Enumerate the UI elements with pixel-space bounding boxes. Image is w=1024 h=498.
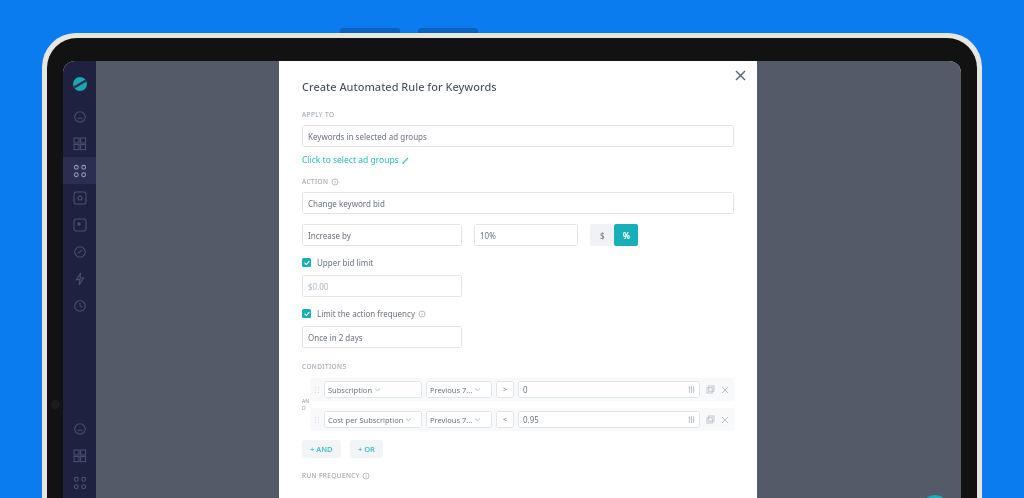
button[interactable]: Nav item 5 <box>63 238 96 265</box>
button[interactable]: Limit the action frequency <box>302 308 425 319</box>
staticText: Click to select ad groups <box>302 154 399 166</box>
button[interactable]: 0.95 <box>518 411 700 428</box>
button[interactable]: Nav item 9 <box>63 442 96 469</box>
button[interactable]: Nav item 6 <box>63 265 96 292</box>
button[interactable]: Nav item 1 <box>63 130 96 157</box>
button[interactable]: Once in 2 days <box>302 326 462 348</box>
button[interactable]: Remove condition <box>719 384 730 395</box>
staticText: < <box>503 415 508 425</box>
button[interactable]: Nav item 7 <box>63 292 96 319</box>
staticText: % <box>623 230 630 241</box>
staticText: + AND <box>310 444 333 454</box>
staticText: Previous 7... <box>430 415 473 425</box>
button[interactable]: Logo <box>67 71 93 97</box>
button[interactable]: $0.00 <box>302 275 462 297</box>
staticText: APPLY TO <box>302 110 335 119</box>
button[interactable]: 0 <box>518 381 700 398</box>
button[interactable]: Remove condition <box>719 414 730 425</box>
staticText: 0.95 <box>523 414 539 425</box>
button[interactable]: + AND <box>302 440 341 458</box>
button[interactable]: Nav item 3 <box>63 184 96 211</box>
staticText: 0 <box>523 384 528 395</box>
staticText: + OR <box>358 444 375 454</box>
staticText: CONDITIONS <box>302 362 347 371</box>
button[interactable]: 10% <box>474 224 578 246</box>
button[interactable]: Nav item 4 <box>63 211 96 238</box>
button[interactable]: $ <box>590 224 614 246</box>
staticText: Increase by <box>308 230 351 241</box>
button[interactable]: % <box>614 224 638 246</box>
button[interactable]: Nav item 8 <box>63 415 96 442</box>
staticText: Once in 2 days <box>308 332 363 343</box>
button[interactable]: Upper bid limit <box>302 257 374 268</box>
staticText: Subscription <box>328 385 373 395</box>
button[interactable]: Cost per Subscription <box>324 411 422 428</box>
staticText: Change keyword bid <box>308 198 385 209</box>
button[interactable]: Previous 7... <box>426 411 492 428</box>
button[interactable]: Nav item 10 <box>63 469 96 496</box>
button[interactable]: + OR <box>350 440 383 458</box>
button[interactable]: Open chat <box>921 495 949 498</box>
button[interactable]: Duplicate <box>705 384 716 395</box>
button[interactable]: Nav item 0 <box>63 103 96 130</box>
button[interactable]: > <box>496 381 514 398</box>
button[interactable]: Automations <box>63 157 96 184</box>
staticText: Previous 7... <box>430 385 473 395</box>
button[interactable]: Close <box>731 66 749 84</box>
staticText: > <box>503 385 508 395</box>
staticText: Limit the action frequency <box>317 308 415 319</box>
staticText: $ <box>600 230 605 241</box>
staticText: Upper bid limit <box>317 257 374 268</box>
staticText: Create Automated Rule for Keywords <box>302 79 497 94</box>
staticText: $0.00 <box>308 281 329 292</box>
staticText: 10% <box>480 230 496 241</box>
staticText: Keywords in selected ad groups <box>308 131 427 142</box>
button[interactable]: < <box>496 411 514 428</box>
button[interactable]: Change keyword bid <box>302 192 734 214</box>
button[interactable]: Subscription <box>324 381 422 398</box>
staticText: Cost per Subscription <box>328 415 404 425</box>
button[interactable]: Duplicate <box>705 414 716 425</box>
staticText: ACTION <box>302 177 329 186</box>
staticText: RUN FREQUENCY <box>302 471 360 480</box>
button[interactable]: Click to select ad groups <box>302 154 409 166</box>
button[interactable]: Increase by <box>302 224 462 246</box>
staticText: AND <box>302 398 310 412</box>
button[interactable]: Previous 7... <box>426 381 492 398</box>
button[interactable]: Keywords in selected ad groups <box>302 125 734 147</box>
